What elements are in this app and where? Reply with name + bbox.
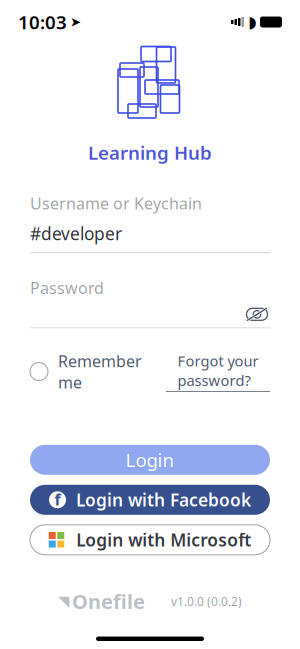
staticText: Login: [125, 447, 174, 472]
staticText: Forgot your password?: [177, 351, 258, 390]
staticText: Login with Facebook: [76, 488, 251, 511]
staticText: ➤: [70, 14, 81, 29]
staticText: ◗: [248, 13, 256, 31]
button[interactable]: Login with Microsoft: [30, 525, 270, 555]
staticText: ◥: [58, 593, 69, 609]
staticText: Remember me: [58, 350, 142, 393]
staticText: v1.0.0 (0.0.2): [171, 593, 242, 609]
staticText: Onefile: [72, 588, 145, 614]
staticText: Username or Keychain: [30, 193, 202, 214]
button[interactable]: Forgot your password?: [166, 351, 270, 392]
staticText: Login with Microsoft: [76, 528, 251, 551]
staticText: #developer: [30, 222, 122, 245]
staticText: Learning Hub: [88, 140, 212, 165]
button[interactable]: Login: [30, 445, 270, 475]
button[interactable]: Remember me: [30, 350, 142, 393]
button[interactable]: Show password: [244, 304, 270, 324]
staticText: f: [54, 489, 60, 510]
staticText: Password: [30, 277, 104, 298]
button[interactable]: f: [30, 485, 270, 515]
staticText: 10:03: [18, 10, 67, 34]
